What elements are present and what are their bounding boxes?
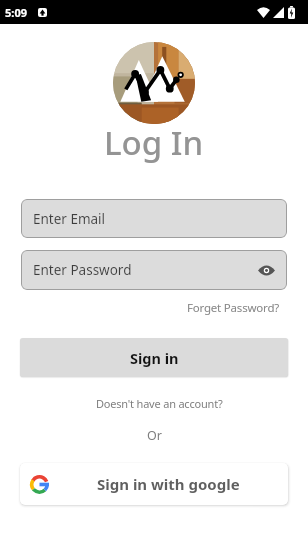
- staticText: Or: [147, 427, 162, 444]
- staticText: Enter Email: [33, 210, 106, 228]
- staticText: 5:09: [5, 5, 27, 20]
- staticText: Log In: [104, 120, 204, 165]
- button[interactable]: Enter Password: [21, 250, 287, 290]
- button[interactable]: Sign in: [20, 338, 288, 377]
- button[interactable]: Sign in with google: [20, 463, 288, 505]
- button[interactable]: Doesn't have an account?: [96, 396, 223, 411]
- staticText: Sign in with google: [97, 474, 240, 494]
- staticText: Enter Password: [33, 261, 132, 279]
- button[interactable]: Enter Email: [21, 199, 287, 238]
- staticText: Sign in: [130, 348, 179, 368]
- button[interactable]: Forget Password?: [187, 300, 280, 316]
